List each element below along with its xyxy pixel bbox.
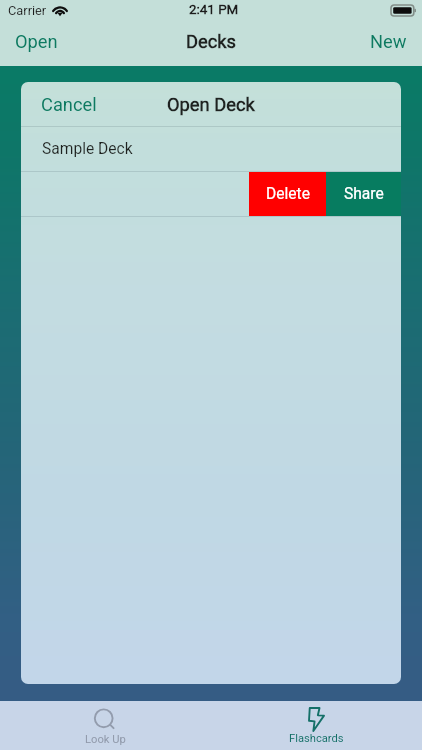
staticText: Carrier bbox=[8, 3, 47, 18]
staticText: Flashcards bbox=[289, 732, 344, 745]
staticText: 2:41 PM bbox=[189, 2, 239, 18]
staticText: Look Up bbox=[85, 733, 126, 746]
button[interactable]: Share bbox=[326, 172, 401, 216]
staticText: Open bbox=[15, 31, 58, 52]
staticText: Sample Deck bbox=[42, 140, 133, 158]
button[interactable]: Delete bbox=[249, 172, 326, 216]
staticText: Open Deck bbox=[167, 94, 255, 115]
button[interactable]: Cancel bbox=[21, 82, 117, 126]
button[interactable]: Open bbox=[0, 22, 73, 66]
button[interactable]: Look Up bbox=[0, 701, 211, 750]
staticText: New bbox=[370, 31, 407, 52]
staticText: Delete bbox=[266, 185, 310, 203]
staticText: Share bbox=[344, 185, 384, 203]
staticText: Decks bbox=[186, 31, 237, 52]
button[interactable]: Sample Deck bbox=[21, 127, 401, 171]
button[interactable]: Flashcards bbox=[211, 701, 422, 750]
staticText: Cancel bbox=[41, 94, 97, 115]
button[interactable]: New bbox=[355, 22, 422, 66]
